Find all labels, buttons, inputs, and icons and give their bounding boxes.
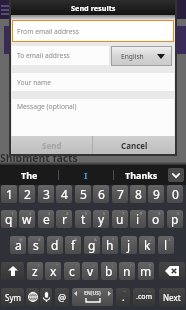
staticText: h — [106, 237, 114, 253]
button[interactable]: 3 — [38, 185, 54, 203]
staticText: j — [127, 237, 131, 253]
button[interactable]: 7 — [112, 185, 128, 203]
button[interactable]: Your name — [12, 73, 174, 91]
button[interactable]: @ — [55, 288, 69, 306]
button[interactable]: v — [82, 262, 98, 280]
button[interactable]: z — [27, 262, 43, 280]
staticText: # — [38, 237, 41, 242]
button[interactable]: English — [111, 46, 172, 66]
button[interactable]: l — [158, 236, 174, 254]
staticText: 4 — [66, 211, 69, 216]
button[interactable]: b — [101, 262, 117, 280]
button[interactable]: 1 — [1, 185, 17, 203]
staticText: d — [51, 237, 59, 253]
button[interactable]: . — [116, 288, 130, 306]
button[interactable]: h — [102, 236, 118, 254]
staticText: ? — [149, 263, 151, 268]
staticText: ! — [38, 263, 40, 268]
staticText: - — [132, 237, 134, 242]
button[interactable]: k — [139, 236, 155, 254]
button[interactable]: Voice input — [40, 288, 52, 306]
button[interactable]: g — [84, 236, 100, 254]
staticText: EN(US) — [84, 290, 101, 297]
button[interactable]: Thanks — [114, 165, 168, 185]
staticText: u — [116, 211, 124, 227]
button[interactable]: c — [64, 262, 80, 280]
button[interactable]: 9 — [148, 185, 164, 203]
staticText: 8 — [135, 186, 142, 202]
button[interactable]: 5 — [75, 185, 91, 203]
staticText: a — [15, 237, 22, 253]
staticText: . — [122, 290, 125, 304]
button[interactable]: 2 — [19, 185, 35, 203]
staticText: ; — [112, 263, 114, 268]
button[interactable]: o — [148, 210, 164, 228]
staticText: t — [81, 211, 86, 227]
button[interactable]: p — [167, 210, 183, 228]
button[interactable]: .com — [133, 288, 155, 306]
button[interactable]: i — [130, 210, 146, 228]
button[interactable]: d — [47, 236, 63, 254]
staticText: 1 — [11, 211, 14, 216]
staticText: 1 — [6, 186, 13, 202]
button[interactable]: Send — [11, 136, 92, 154]
button[interactable]: j — [121, 236, 137, 254]
button[interactable]: The — [0, 165, 58, 185]
staticText: l — [164, 237, 168, 253]
button[interactable]: y — [93, 210, 109, 228]
staticText: & — [94, 237, 97, 242]
button[interactable]: m — [138, 262, 154, 280]
staticText: b — [105, 263, 113, 279]
button[interactable]: q — [1, 210, 17, 228]
button[interactable]: 8 — [130, 185, 146, 203]
button[interactable]: To email address — [12, 46, 109, 65]
staticText: ' — [76, 263, 77, 268]
button[interactable]: Sym — [1, 288, 24, 306]
button[interactable]: Shift — [1, 262, 24, 280]
staticText: Shipment facts — [0, 151, 78, 165]
staticText: Cancel — [121, 140, 148, 151]
button[interactable]: t — [75, 210, 91, 228]
staticText: .com — [136, 292, 153, 302]
staticText: Message (optional) — [17, 102, 77, 111]
button[interactable]: From email address — [13, 21, 173, 41]
button[interactable]: u — [112, 210, 128, 228]
button[interactable]: f — [65, 236, 81, 254]
button[interactable]: Backspace — [159, 262, 185, 280]
button[interactable]: 0 — [167, 185, 183, 203]
staticText: f — [71, 237, 76, 253]
button[interactable]: Cancel — [93, 136, 175, 154]
button[interactable]: 6 — [93, 185, 109, 203]
staticText: % — [74, 237, 78, 242]
button[interactable]: x — [45, 262, 61, 280]
button[interactable]: More suggestions — [168, 168, 184, 182]
staticText: Sym — [5, 292, 21, 303]
staticText: : — [93, 263, 95, 268]
staticText: / — [130, 263, 132, 268]
staticText: p — [171, 211, 179, 227]
staticText: @ — [19, 237, 23, 242]
staticText: 2 — [29, 211, 32, 216]
button[interactable]: Next — [159, 288, 185, 306]
button[interactable]: Message (optional) — [12, 99, 174, 136]
button[interactable]: Space — [72, 288, 113, 306]
staticText: 3 — [43, 186, 50, 202]
button[interactable]: 4 — [56, 185, 72, 203]
staticText: v — [87, 263, 94, 279]
staticText: 8 — [140, 211, 143, 216]
button[interactable]: I — [59, 165, 113, 185]
button[interactable]: w — [19, 210, 35, 228]
staticText: Send results — [71, 3, 116, 13]
button[interactable]: s — [28, 236, 44, 254]
staticText: r — [62, 211, 67, 227]
button[interactable]: n — [119, 262, 135, 280]
staticText: The — [21, 169, 38, 181]
button[interactable]: a — [10, 236, 26, 254]
staticText: Send — [42, 140, 62, 151]
button[interactable]: Change language — [26, 288, 39, 306]
staticText: @ — [58, 291, 67, 303]
staticText: 0 — [172, 186, 179, 202]
staticText: z — [32, 263, 38, 279]
button[interactable]: r — [56, 210, 72, 228]
button[interactable]: e — [38, 210, 54, 228]
